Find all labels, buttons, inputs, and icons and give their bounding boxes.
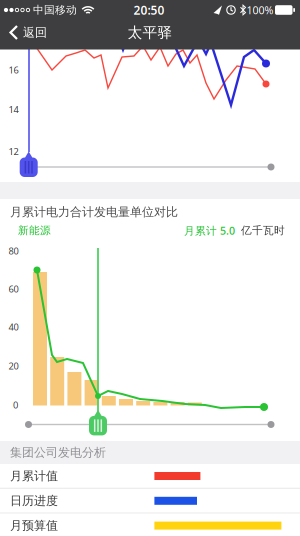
button[interactable]: 日历进度 [0,489,300,513]
button[interactable]: 月预算值 [0,514,300,536]
button[interactable]: 月累计值 [0,464,300,488]
staticText: 14 [8,103,18,116]
staticText: 月累计电力合计发电量单位对比 [10,205,178,219]
staticText: 20 [8,360,18,372]
staticText: 新能源 [18,224,51,237]
staticText: 月累计 5.0 [184,223,235,238]
staticText: 60 [8,283,18,295]
staticText: 月累计值 [10,469,58,483]
staticText: 月预算值 [10,518,58,533]
staticText: 0 [13,399,18,411]
staticText: 40 [8,321,18,333]
staticText: 80 [8,245,18,257]
staticText: 太平驿 [127,23,172,41]
staticText: 20:50 [133,2,164,18]
staticText: 返回 [23,25,47,40]
staticText: 12 [8,145,18,158]
staticText: 100% [246,3,273,17]
button[interactable]: 时间滑块 [19,151,39,177]
staticText: 中国移动 [33,3,77,16]
button[interactable]: 时间滑块 [88,409,108,435]
staticText: 16 [8,64,18,76]
staticText: 亿千瓦时 [241,224,285,237]
staticText: 集团公司发电分析 [10,445,106,460]
staticText: 日历进度 [10,493,58,508]
button[interactable]: 返回 [9,17,47,47]
